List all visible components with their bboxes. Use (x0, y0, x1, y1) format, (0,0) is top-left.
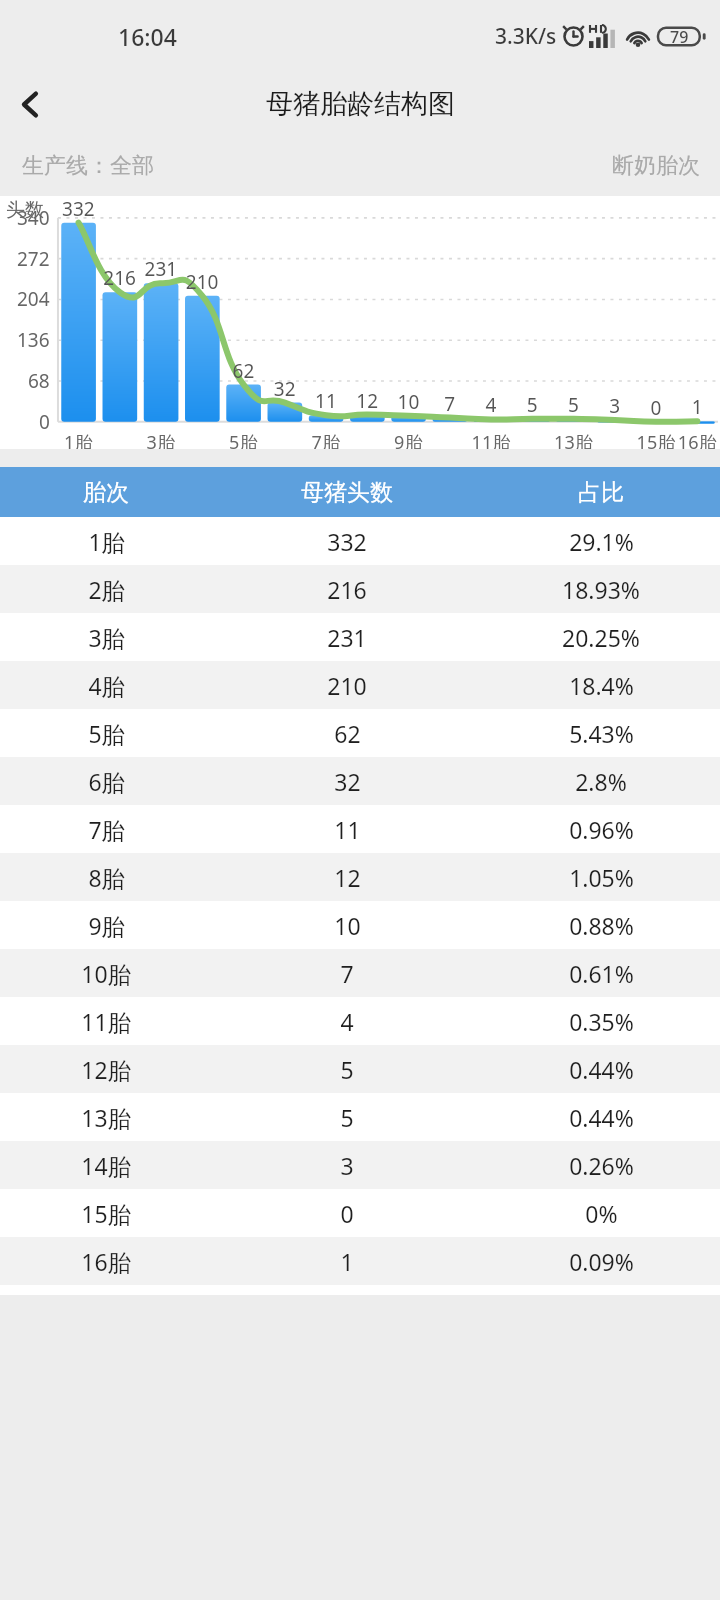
staticText: 12胎 (81, 1054, 131, 1085)
staticText: 2.8% (575, 766, 627, 797)
button[interactable]: 15胎 (0, 1189, 720, 1237)
staticText: 胎次 (83, 478, 129, 507)
staticText: 占比 (578, 478, 624, 507)
staticText: 7 (340, 958, 354, 989)
staticText: 12 (334, 862, 361, 893)
staticText: 9胎 (88, 910, 125, 941)
staticText: 0.96% (569, 814, 634, 845)
button[interactable]: 3胎 (0, 613, 720, 661)
staticText: 216 (327, 574, 367, 605)
button[interactable]: 12胎 (0, 1045, 720, 1093)
staticText: 11 (334, 814, 361, 845)
staticText: 0.09% (569, 1246, 634, 1277)
staticText: 62 (334, 718, 361, 749)
staticText: 16:04 (118, 21, 177, 52)
staticText: 3.3K/s (495, 22, 557, 51)
button[interactable]: 胎次 (0, 467, 720, 517)
staticText: 6胎 (88, 766, 125, 797)
button[interactable]: 11胎 (0, 997, 720, 1045)
button[interactable]: 1胎 (0, 517, 720, 565)
staticText: 15胎 (81, 1198, 131, 1229)
staticText: 29.1% (569, 526, 634, 557)
button[interactable]: 9胎 (0, 901, 720, 949)
button[interactable]: Back (0, 74, 60, 134)
staticText: 断奶胎次 (612, 152, 700, 180)
staticText: 生产线：全部 (22, 152, 154, 180)
button[interactable]: 生产线：全部 (0, 140, 176, 192)
button[interactable]: 13胎 (0, 1093, 720, 1141)
button[interactable]: 16胎 (0, 1237, 720, 1285)
staticText: 11胎 (81, 1006, 131, 1037)
staticText: 1 (340, 1246, 354, 1277)
staticText: 3 (340, 1150, 354, 1181)
button[interactable]: 10胎 (0, 949, 720, 997)
staticText: 4胎 (88, 670, 125, 701)
staticText: 8胎 (88, 862, 125, 893)
staticText: 0.44% (569, 1102, 634, 1133)
staticText: 1.05% (569, 862, 634, 893)
staticText: 210 (327, 670, 367, 701)
button[interactable]: 4胎 (0, 661, 720, 709)
staticText: 7胎 (88, 814, 125, 845)
button[interactable]: 7胎 (0, 805, 720, 853)
staticText: 母猪头数 (301, 478, 393, 507)
button[interactable]: 2胎 (0, 565, 720, 613)
staticText: 5 (340, 1102, 354, 1133)
staticText: 10 (334, 910, 361, 941)
staticText: 18.4% (569, 670, 634, 701)
staticText: 0.26% (569, 1150, 634, 1181)
button[interactable]: 6胎 (0, 757, 720, 805)
staticText: 10胎 (81, 958, 131, 989)
staticText: 14胎 (81, 1150, 131, 1181)
staticText: 4 (340, 1006, 354, 1037)
staticText: 18.93% (562, 574, 640, 605)
staticText: 32 (334, 766, 361, 797)
staticText: 2胎 (88, 574, 125, 605)
staticText: 13胎 (81, 1102, 131, 1133)
button[interactable]: 8胎 (0, 853, 720, 901)
staticText: 0 (340, 1198, 354, 1229)
staticText: 231 (327, 622, 367, 653)
staticText: 332 (327, 526, 367, 557)
staticText: 79 (670, 26, 689, 48)
button[interactable]: 断奶胎次 (592, 140, 720, 192)
staticText: 母猪胎龄结构图 (266, 87, 455, 121)
staticText: 0.35% (569, 1006, 634, 1037)
staticText: 0% (585, 1198, 618, 1229)
staticText: 5.43% (569, 718, 634, 749)
staticText: 3胎 (88, 622, 125, 653)
staticText: 1胎 (88, 526, 125, 557)
staticText: 5胎 (88, 718, 125, 749)
staticText: 0.44% (569, 1054, 634, 1085)
staticText: 0.88% (569, 910, 634, 941)
staticText: 5 (340, 1054, 354, 1085)
button[interactable]: 14胎 (0, 1141, 720, 1189)
staticText: 16胎 (81, 1246, 131, 1277)
staticText: 0.61% (569, 958, 634, 989)
button[interactable]: 5胎 (0, 709, 720, 757)
staticText: 20.25% (562, 622, 640, 653)
